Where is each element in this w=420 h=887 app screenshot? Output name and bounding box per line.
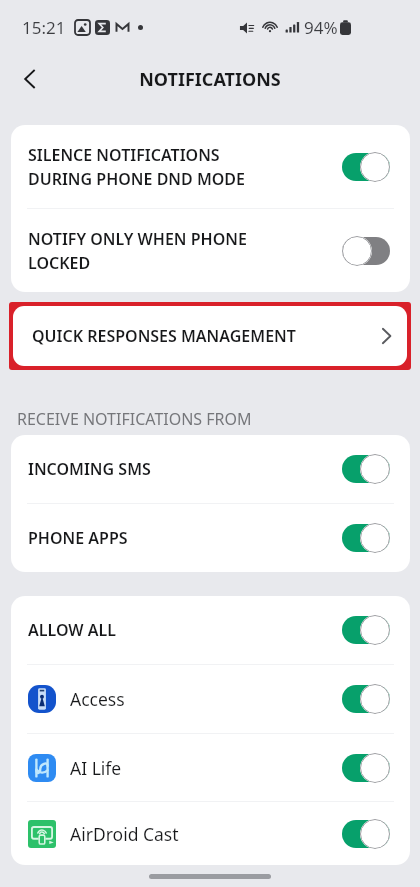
staticText: PHONE APPS [28,527,128,549]
staticText: RECEIVE NOTIFICATIONS FROM [17,408,252,430]
button[interactable]: Toggle on [342,615,390,645]
button[interactable]: Toggle on [342,753,390,783]
button[interactable]: SILENCE NOTIFICATIONS DURING PHONE DND M… [11,125,410,208]
button[interactable]: QUICK RESPONSES MANAGEMENT [13,306,407,366]
button[interactable]: Toggle on [342,454,390,484]
staticText: ALLOW ALL [28,619,116,641]
staticText: AI Life [70,756,122,780]
staticText: INCOMING SMS [28,458,151,480]
staticText: QUICK RESPONSES MANAGEMENT [32,325,296,347]
staticText: 94% [304,16,338,39]
button[interactable]: Toggle off [342,236,390,266]
button[interactable]: INCOMING SMS [11,435,410,503]
button[interactable]: Back [12,61,48,97]
button[interactable]: Toggle on [342,684,390,714]
staticText: 15:21 [22,16,66,39]
button[interactable]: Toggle on [342,819,390,849]
staticText: SILENCE NOTIFICATIONS DURING PHONE DND M… [28,144,246,190]
staticText: NOTIFICATIONS [139,67,281,92]
button[interactable]: NOTIFY ONLY WHEN PHONE LOCKED [11,209,410,292]
button[interactable]: Toggle on [342,523,390,553]
button[interactable]: Access [11,665,410,733]
button[interactable]: Toggle on [342,152,390,182]
staticText: NOTIFY ONLY WHEN PHONE LOCKED [28,228,247,274]
button[interactable]: AI Life [11,734,410,801]
button[interactable]: ALLOW ALL [11,596,410,664]
button[interactable]: AirDroid Cast [11,802,410,865]
staticText: AirDroid Cast [70,822,179,846]
staticText: Access [70,687,125,711]
button[interactable]: PHONE APPS [11,504,410,572]
